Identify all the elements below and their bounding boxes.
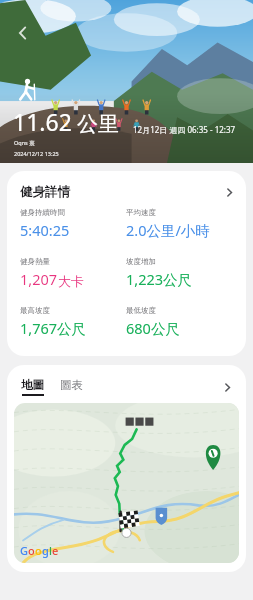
staticText: 平均速度	[126, 208, 156, 217]
staticText: G	[20, 543, 28, 558]
staticText: 大卡	[58, 273, 84, 289]
staticText: Oqns 裏	[14, 139, 35, 147]
staticText: l	[49, 543, 52, 558]
staticText: 健身詳情	[20, 184, 70, 200]
staticText: 地圖	[21, 378, 44, 392]
staticText: 2024/12/12 13:25	[14, 150, 59, 157]
staticText: 5:40:25	[20, 220, 70, 240]
button[interactable]: Route map	[14, 403, 239, 563]
staticText: 12月12日 週四 06:35 - 12:37	[133, 124, 236, 135]
button[interactable]: Expand map	[219, 379, 235, 395]
staticText: 健身熱量	[20, 257, 50, 266]
staticText: 公里	[77, 111, 119, 137]
staticText: 圖表	[60, 378, 83, 392]
staticText: 2.0公里/小時	[126, 220, 210, 240]
staticText: 1,207	[20, 269, 58, 289]
staticText: 1,767公尺	[20, 318, 87, 338]
staticText: o	[35, 543, 42, 558]
staticText: e	[52, 543, 59, 558]
staticText: 健身持續時間	[20, 208, 65, 217]
staticText: 11.62	[13, 106, 72, 137]
button[interactable]: Back	[10, 20, 36, 46]
staticText: 1,223公尺	[126, 269, 193, 289]
staticText: 最高坡度	[20, 306, 50, 315]
button[interactable]: 地圖	[21, 378, 44, 396]
staticText: 680公尺	[126, 318, 180, 338]
staticText: 最低坡度	[126, 306, 156, 315]
staticText: 坡度增加	[126, 257, 156, 266]
button[interactable]: 圖表	[60, 378, 83, 396]
staticText: g	[42, 543, 49, 558]
staticText: o	[28, 543, 35, 558]
button[interactable]: 健身詳情	[7, 171, 246, 208]
